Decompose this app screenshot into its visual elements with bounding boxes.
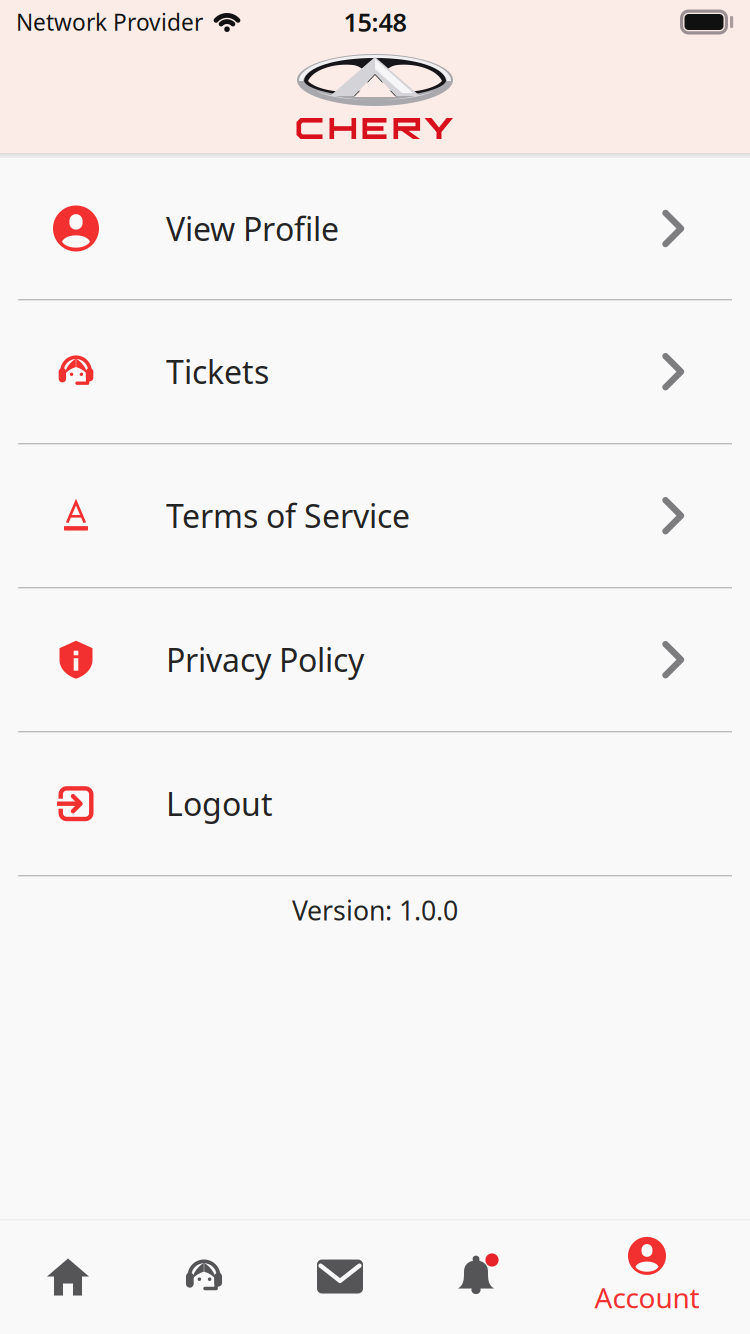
button[interactable]: Account <box>544 1221 750 1332</box>
staticText: 15:48 <box>343 5 406 39</box>
button[interactable]: Privacy Policy <box>0 588 750 731</box>
staticText: Logout <box>166 782 273 825</box>
staticText: Version: 1.0.0 <box>292 892 458 928</box>
button[interactable]: Tickets <box>0 300 750 443</box>
button[interactable]: Logout <box>0 732 750 875</box>
button[interactable]: View Profile <box>0 158 750 299</box>
button[interactable]: Support <box>136 1221 272 1332</box>
button[interactable]: Notifications <box>408 1221 544 1332</box>
button[interactable]: Home <box>0 1221 136 1332</box>
staticText: Network Provider <box>16 7 203 37</box>
staticText: Terms of Service <box>166 494 410 537</box>
staticText: Tickets <box>166 350 269 393</box>
button[interactable]: Messages <box>272 1221 408 1332</box>
staticText: Account <box>594 1279 699 1316</box>
button[interactable]: Terms of Service <box>0 444 750 587</box>
staticText: View Profile <box>166 207 339 250</box>
staticText: Privacy Policy <box>166 638 364 681</box>
